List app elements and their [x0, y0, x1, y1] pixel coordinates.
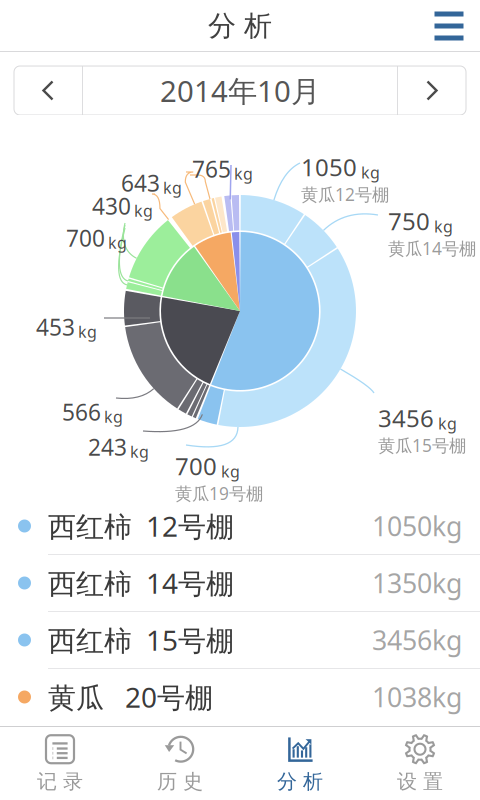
button[interactable]: Menu: [418, 0, 480, 52]
button[interactable]: 西红柿 12号棚: [0, 498, 480, 555]
staticText: 243: [88, 432, 127, 462]
staticText: 566: [62, 397, 101, 427]
staticText: 430: [92, 191, 131, 221]
staticText: kg: [438, 413, 457, 434]
staticText: kg: [361, 162, 380, 183]
staticText: 643: [121, 168, 160, 198]
staticText: 700: [175, 450, 217, 482]
staticText: kg: [434, 216, 453, 237]
staticText: 1050kg: [372, 508, 462, 544]
button[interactable]: Next month: [398, 66, 466, 115]
staticText: 黄瓜12号棚: [301, 183, 389, 206]
staticText: kg: [78, 321, 97, 342]
button[interactable]: 历 史: [120, 727, 240, 800]
button[interactable]: 记 录: [0, 727, 120, 800]
staticText: kg: [163, 177, 182, 198]
staticText: 765: [192, 154, 231, 184]
staticText: 1050: [301, 151, 357, 183]
staticText: kg: [221, 461, 240, 482]
staticText: 黄瓜15号棚: [378, 434, 466, 457]
button[interactable]: 西红柿 14号棚: [0, 555, 480, 612]
staticText: kg: [104, 406, 123, 427]
staticText: kg: [234, 163, 253, 184]
staticText: 3456: [378, 402, 434, 434]
staticText: 1038kg: [372, 679, 462, 715]
staticText: 记 录: [37, 769, 83, 794]
staticText: 700: [66, 223, 105, 253]
staticText: kg: [130, 441, 149, 462]
staticText: 西红柿 12号棚: [48, 507, 234, 545]
staticText: 黄瓜 20号棚: [48, 678, 213, 716]
staticText: 分 析: [277, 769, 323, 794]
staticText: 西红柿 15号棚: [48, 621, 234, 659]
staticText: 2014年10月: [160, 71, 320, 110]
staticText: 历 史: [157, 769, 203, 794]
staticText: 453: [36, 312, 75, 342]
staticText: 3456kg: [372, 622, 462, 658]
button[interactable]: 分 析: [240, 727, 360, 800]
staticText: kg: [108, 232, 127, 253]
staticText: 黄瓜19号棚: [175, 482, 263, 505]
staticText: 1350kg: [372, 565, 462, 601]
staticText: 黄瓜14号棚: [388, 237, 476, 260]
staticText: 设 置: [397, 769, 443, 794]
button[interactable]: 设 置: [360, 727, 480, 800]
button[interactable]: 西红柿 15号棚: [0, 612, 480, 669]
staticText: 750: [388, 205, 430, 237]
button[interactable]: Previous month: [14, 66, 82, 115]
staticText: 分 析: [208, 9, 272, 43]
staticText: kg: [134, 200, 153, 221]
button[interactable]: 黄瓜 20号棚: [0, 669, 480, 726]
staticText: 西红柿 14号棚: [48, 564, 234, 602]
